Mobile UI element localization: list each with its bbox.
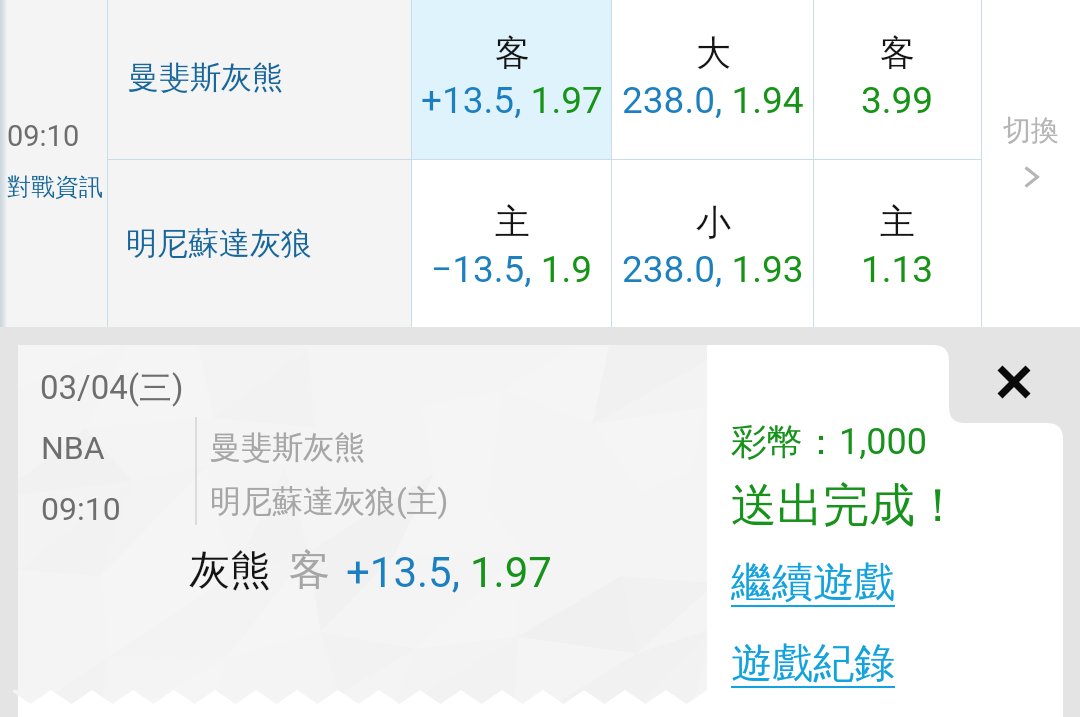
button[interactable]: 曼斐斯灰熊 [108, 0, 411, 159]
button[interactable]: 大 [612, 0, 813, 159]
staticText: 繼續遊戲 [731, 557, 895, 609]
staticText: 送出完成！ [731, 477, 961, 535]
staticText: 1.13 [861, 248, 934, 291]
staticText: 09:10 [7, 119, 80, 153]
staticText: 客 [495, 31, 530, 75]
staticText: 大 [696, 31, 731, 75]
staticText: 彩幣：1,000 [731, 419, 928, 464]
staticText: 03/04(三) [40, 367, 184, 409]
staticText: 小 [696, 200, 731, 244]
staticText: 主 [880, 200, 915, 244]
staticText: 遊戲紀錄 [731, 638, 895, 690]
button[interactable]: 明尼蘇達灰狼 [108, 160, 411, 327]
staticText: 238.0, 1.93 [622, 248, 804, 291]
button[interactable]: 遊戲紀錄 [731, 638, 895, 690]
staticText: +13.5, 1.97 [421, 79, 603, 122]
button[interactable]: 09:10 [0, 0, 107, 327]
staticText: 對戰資訊 [7, 172, 103, 202]
staticText: 238.0, 1.94 [622, 79, 804, 122]
staticText: 曼斐斯灰熊 [128, 58, 283, 97]
staticText: 灰熊 [189, 545, 271, 597]
staticText: 明尼蘇達灰狼 [126, 224, 312, 263]
staticText: 3.99 [861, 79, 934, 122]
button[interactable]: 切換 [982, 0, 1080, 327]
button[interactable]: 小 [612, 160, 813, 327]
button[interactable]: 主 [814, 160, 981, 327]
staticText: 09:10 [41, 490, 121, 528]
staticText: 1.97 [470, 548, 552, 597]
staticText: +13.5, [346, 548, 460, 597]
button[interactable]: 主 [412, 160, 611, 327]
staticText: 客 [880, 31, 915, 75]
staticText: −13.5, 1.9 [431, 248, 593, 291]
staticText: 主 [495, 200, 530, 244]
staticText: NBA [41, 429, 105, 467]
button[interactable]: 關閉 [972, 340, 1056, 424]
staticText: 切換 [1003, 113, 1059, 148]
button[interactable]: 客 [412, 0, 611, 159]
staticText: 曼斐斯灰熊 [210, 428, 365, 467]
staticText: 客 [289, 545, 330, 597]
staticText: 明尼蘇達灰狼(主) [210, 482, 449, 521]
button[interactable]: 繼續遊戲 [731, 557, 895, 609]
button[interactable]: 客 [814, 0, 981, 159]
